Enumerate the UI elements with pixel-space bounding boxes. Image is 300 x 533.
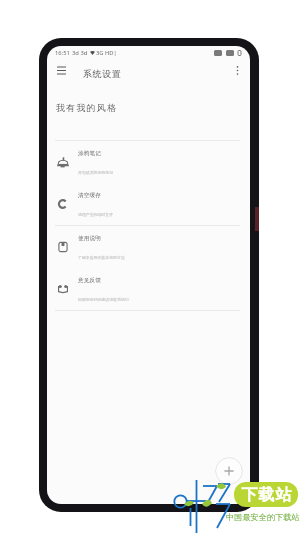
staticText: 清理产生的临时文件 xyxy=(78,212,114,217)
staticText: 涂鸦笔记 xyxy=(78,150,101,157)
button[interactable]: Menu xyxy=(50,59,72,81)
staticText: 3d 3d xyxy=(72,49,88,57)
button[interactable]: 清空缓存 xyxy=(47,183,250,225)
button[interactable]: 意见反馈 xyxy=(47,268,250,310)
staticText: 系统设置 xyxy=(83,68,122,79)
staticText: 3G HD| xyxy=(96,49,117,57)
staticText: 意见反馈 xyxy=(78,277,101,284)
button[interactable]: 涂鸦笔记 xyxy=(47,141,250,183)
staticText: 了解本应用的基本使用方法 xyxy=(78,255,125,260)
staticText: 16:51 xyxy=(55,49,70,57)
staticText: 如果您有好的建议请联系我们 xyxy=(78,297,129,302)
staticText: 清空缓存 xyxy=(78,192,101,199)
staticText: 使用说明 xyxy=(78,235,101,242)
button[interactable]: Add xyxy=(215,457,243,485)
staticText: 下载站 xyxy=(241,485,292,505)
button[interactable]: More options xyxy=(226,59,248,81)
staticText: 开启或关闭涂鸦笔记 xyxy=(78,170,114,175)
button[interactable]: 使用说明 xyxy=(47,226,250,268)
staticText: 中国最安全的下载站 xyxy=(226,512,300,522)
staticText: 我有我的风格 xyxy=(56,102,118,113)
